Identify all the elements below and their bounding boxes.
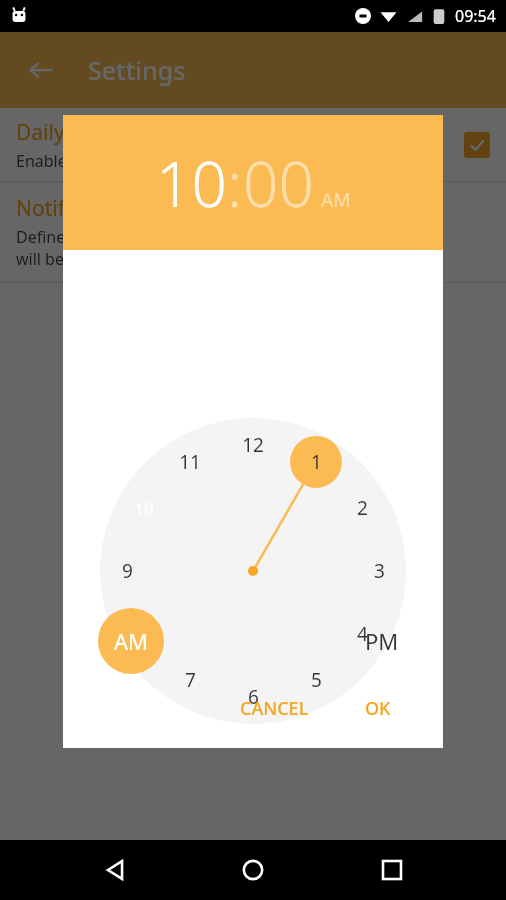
button[interactable]: Recents [368, 846, 416, 894]
button[interactable]: 9 [107, 557, 147, 585]
staticText: Enable daily notification [16, 150, 196, 172]
staticText: 12 [242, 432, 264, 458]
button[interactable]: Notification time [0, 182, 506, 282]
staticText: CANCEL [240, 696, 309, 721]
button[interactable]: 1 [296, 448, 336, 476]
staticText: 6 [248, 684, 259, 710]
staticText: 3 [374, 558, 385, 584]
staticText: 9 [122, 558, 133, 584]
button[interactable]: 11 [170, 448, 210, 476]
button[interactable]: 2 [342, 494, 382, 522]
staticText: 1 [311, 449, 322, 475]
button[interactable]: 8 [124, 620, 164, 648]
button[interactable]: 12 [233, 431, 273, 459]
button[interactable]: 5 [296, 666, 336, 694]
staticText: Define the time the notification will be… [16, 226, 251, 270]
staticText: Notification time [16, 194, 181, 223]
button[interactable]: 7 [170, 666, 210, 694]
button[interactable]: OK [353, 688, 403, 729]
button[interactable]: Daily reminder [0, 108, 506, 181]
staticText: Daily reminder [16, 118, 162, 147]
button[interactable]: 4 [342, 620, 382, 648]
button[interactable]: 6 [233, 683, 273, 711]
staticText: 10 [134, 497, 154, 520]
button[interactable]: CANCEL [228, 688, 321, 729]
staticText: AM [321, 187, 351, 213]
button[interactable]: Back [24, 53, 58, 87]
staticText: PM [365, 626, 399, 656]
staticText: 5 [311, 667, 322, 693]
staticText: OK [365, 696, 391, 721]
staticText: 8 [139, 621, 150, 647]
button[interactable]: 3 [359, 557, 399, 585]
staticText: 4 [357, 621, 368, 647]
button[interactable]: Back [91, 846, 139, 894]
button[interactable]: 00 [243, 141, 314, 225]
staticText: 7 [185, 667, 196, 693]
button[interactable]: PM [365, 626, 399, 656]
button[interactable]: Home [229, 846, 277, 894]
staticText: 11 [179, 449, 201, 475]
button[interactable]: 10 [156, 141, 227, 225]
staticText: 09:54 [455, 5, 496, 27]
staticText: : [227, 141, 243, 225]
staticText: 2 [357, 495, 368, 521]
staticText: AM [114, 626, 149, 656]
staticText: Settings [88, 53, 186, 87]
button[interactable]: AM [98, 608, 164, 674]
